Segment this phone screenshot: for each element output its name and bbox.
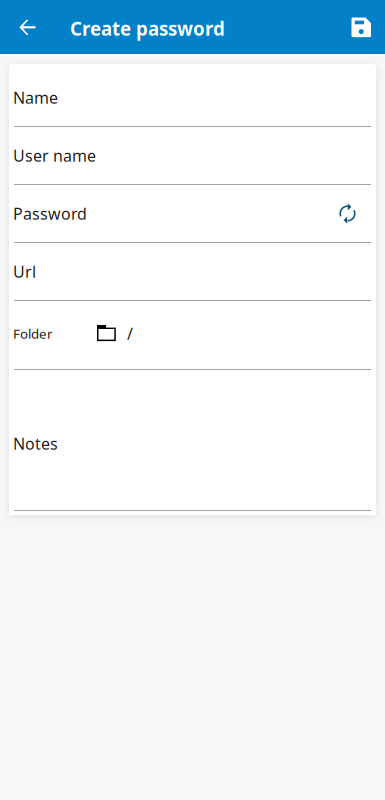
staticText: User name [13, 145, 96, 166]
button[interactable]: Password [13, 185, 329, 242]
button[interactable]: Name [9, 69, 376, 126]
staticText: Name [13, 87, 58, 108]
staticText: Notes [13, 433, 58, 454]
staticText: Url [13, 261, 36, 282]
staticText: Create password [70, 16, 225, 41]
button[interactable]: Notes [9, 370, 376, 510]
button[interactable]: Folder [9, 301, 376, 369]
button[interactable]: User name [9, 127, 376, 184]
button[interactable]: Save [338, 0, 385, 54]
staticText: Folder [13, 325, 53, 342]
button[interactable]: Back [0, 0, 56, 54]
staticText: / [127, 323, 133, 344]
button[interactable]: Generate password [329, 194, 372, 232]
button[interactable]: Url [9, 243, 376, 300]
staticText: Password [13, 203, 87, 224]
